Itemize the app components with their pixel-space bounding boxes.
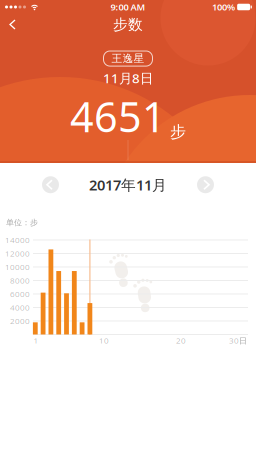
staticText: 30日 bbox=[229, 335, 247, 346]
staticText: 步数 bbox=[113, 15, 143, 33]
staticText: 11月8日 bbox=[103, 69, 153, 87]
staticText: 2000 bbox=[10, 316, 30, 326]
staticText: 10 bbox=[99, 335, 109, 346]
button[interactable]: Previous month bbox=[42, 176, 59, 193]
staticText: 2017年11月 bbox=[89, 175, 167, 194]
staticText: 20 bbox=[176, 335, 186, 346]
staticText: 12000 bbox=[5, 248, 30, 259]
staticText: 8000 bbox=[10, 275, 30, 286]
staticText: 4651 bbox=[70, 89, 166, 144]
staticText: 步 bbox=[170, 122, 186, 142]
staticText: 4000 bbox=[10, 302, 30, 313]
staticText: 100% bbox=[212, 1, 235, 13]
button[interactable]: Next month bbox=[197, 176, 214, 193]
staticText: 6000 bbox=[10, 289, 30, 299]
staticText: 1 bbox=[33, 335, 38, 346]
staticText: 14000 bbox=[5, 235, 30, 245]
staticText: 10000 bbox=[5, 262, 30, 272]
staticText: 王逸星 bbox=[111, 52, 144, 65]
staticText: 9:00 AM bbox=[110, 1, 145, 13]
staticText: 单位：步 bbox=[6, 218, 38, 227]
button[interactable]: 王逸星 bbox=[103, 51, 152, 66]
button[interactable]: Back bbox=[0, 14, 15, 35]
